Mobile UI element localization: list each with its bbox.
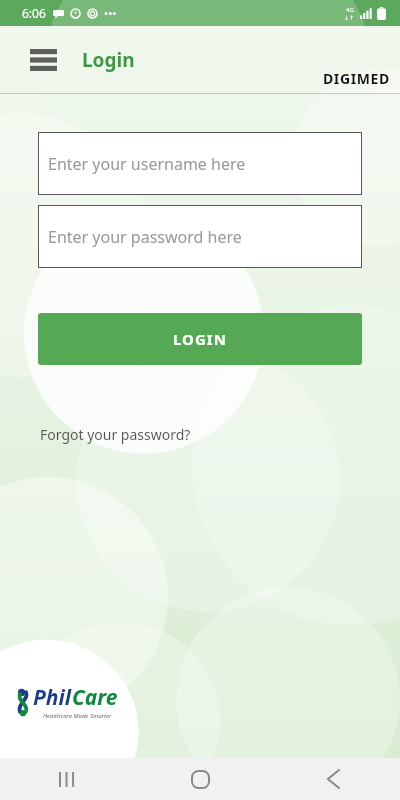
staticText: LOGIN bbox=[173, 329, 227, 349]
staticText: ••• bbox=[104, 6, 117, 21]
staticText: Enter your username here bbox=[48, 153, 246, 175]
button[interactable]: Enter your username here bbox=[38, 132, 362, 195]
staticText: Care bbox=[72, 683, 118, 712]
staticText: Login bbox=[82, 47, 135, 73]
button[interactable]: Home bbox=[134, 758, 267, 800]
staticText: Enter your password here bbox=[48, 226, 242, 248]
staticText: Healthcare Made Smarter bbox=[43, 712, 112, 720]
staticText: 4G bbox=[346, 6, 354, 14]
staticText: DIGIMED bbox=[323, 69, 390, 88]
button[interactable]: Recents bbox=[0, 758, 134, 800]
button[interactable]: Back bbox=[267, 758, 400, 800]
button[interactable]: Menu bbox=[26, 43, 60, 77]
staticText: ↓↑ bbox=[344, 14, 355, 21]
button[interactable]: Forgot your password? bbox=[40, 425, 191, 444]
button[interactable]: LOGIN bbox=[38, 313, 362, 365]
button[interactable]: Enter your password here bbox=[38, 205, 362, 268]
staticText: 6:06 bbox=[22, 5, 46, 21]
staticText: Phil bbox=[33, 683, 72, 712]
